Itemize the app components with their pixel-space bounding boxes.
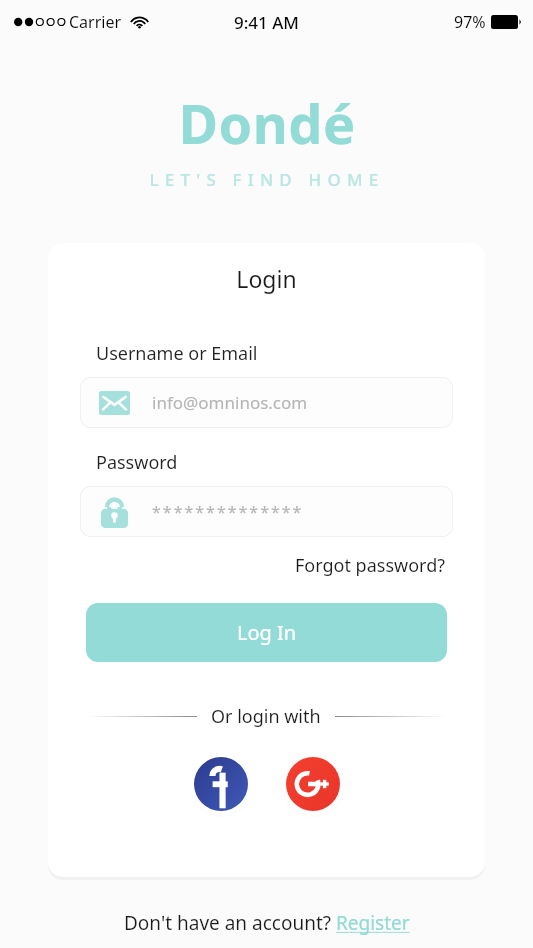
staticText: Forgot password? xyxy=(295,553,446,578)
button[interactable]: ************** xyxy=(80,486,453,537)
staticText: Dondé xyxy=(178,86,356,160)
staticText: info@omninos.com xyxy=(152,391,308,414)
staticText: Carrier xyxy=(69,11,122,33)
staticText: Register xyxy=(336,910,410,936)
button[interactable]: Register xyxy=(336,910,410,936)
staticText: ************** xyxy=(152,501,304,523)
button[interactable]: Login with Facebook xyxy=(188,751,254,817)
staticText: Login xyxy=(48,263,485,294)
staticText: Log In xyxy=(237,619,297,646)
staticText: Password xyxy=(96,450,178,475)
staticText: Don't have an account? xyxy=(124,910,336,936)
staticText: 97% xyxy=(454,11,486,33)
staticText: Username or Email xyxy=(96,341,258,366)
button[interactable]: info@omninos.com xyxy=(80,377,453,428)
staticText: Or login with xyxy=(211,704,321,729)
button[interactable]: Forgot password? xyxy=(293,551,448,580)
staticText: LET'S FIND HOME xyxy=(149,168,385,191)
staticText: 9:41 AM xyxy=(234,11,299,34)
button[interactable]: Login with Google Plus xyxy=(280,751,346,817)
button[interactable]: Log In xyxy=(86,603,447,662)
